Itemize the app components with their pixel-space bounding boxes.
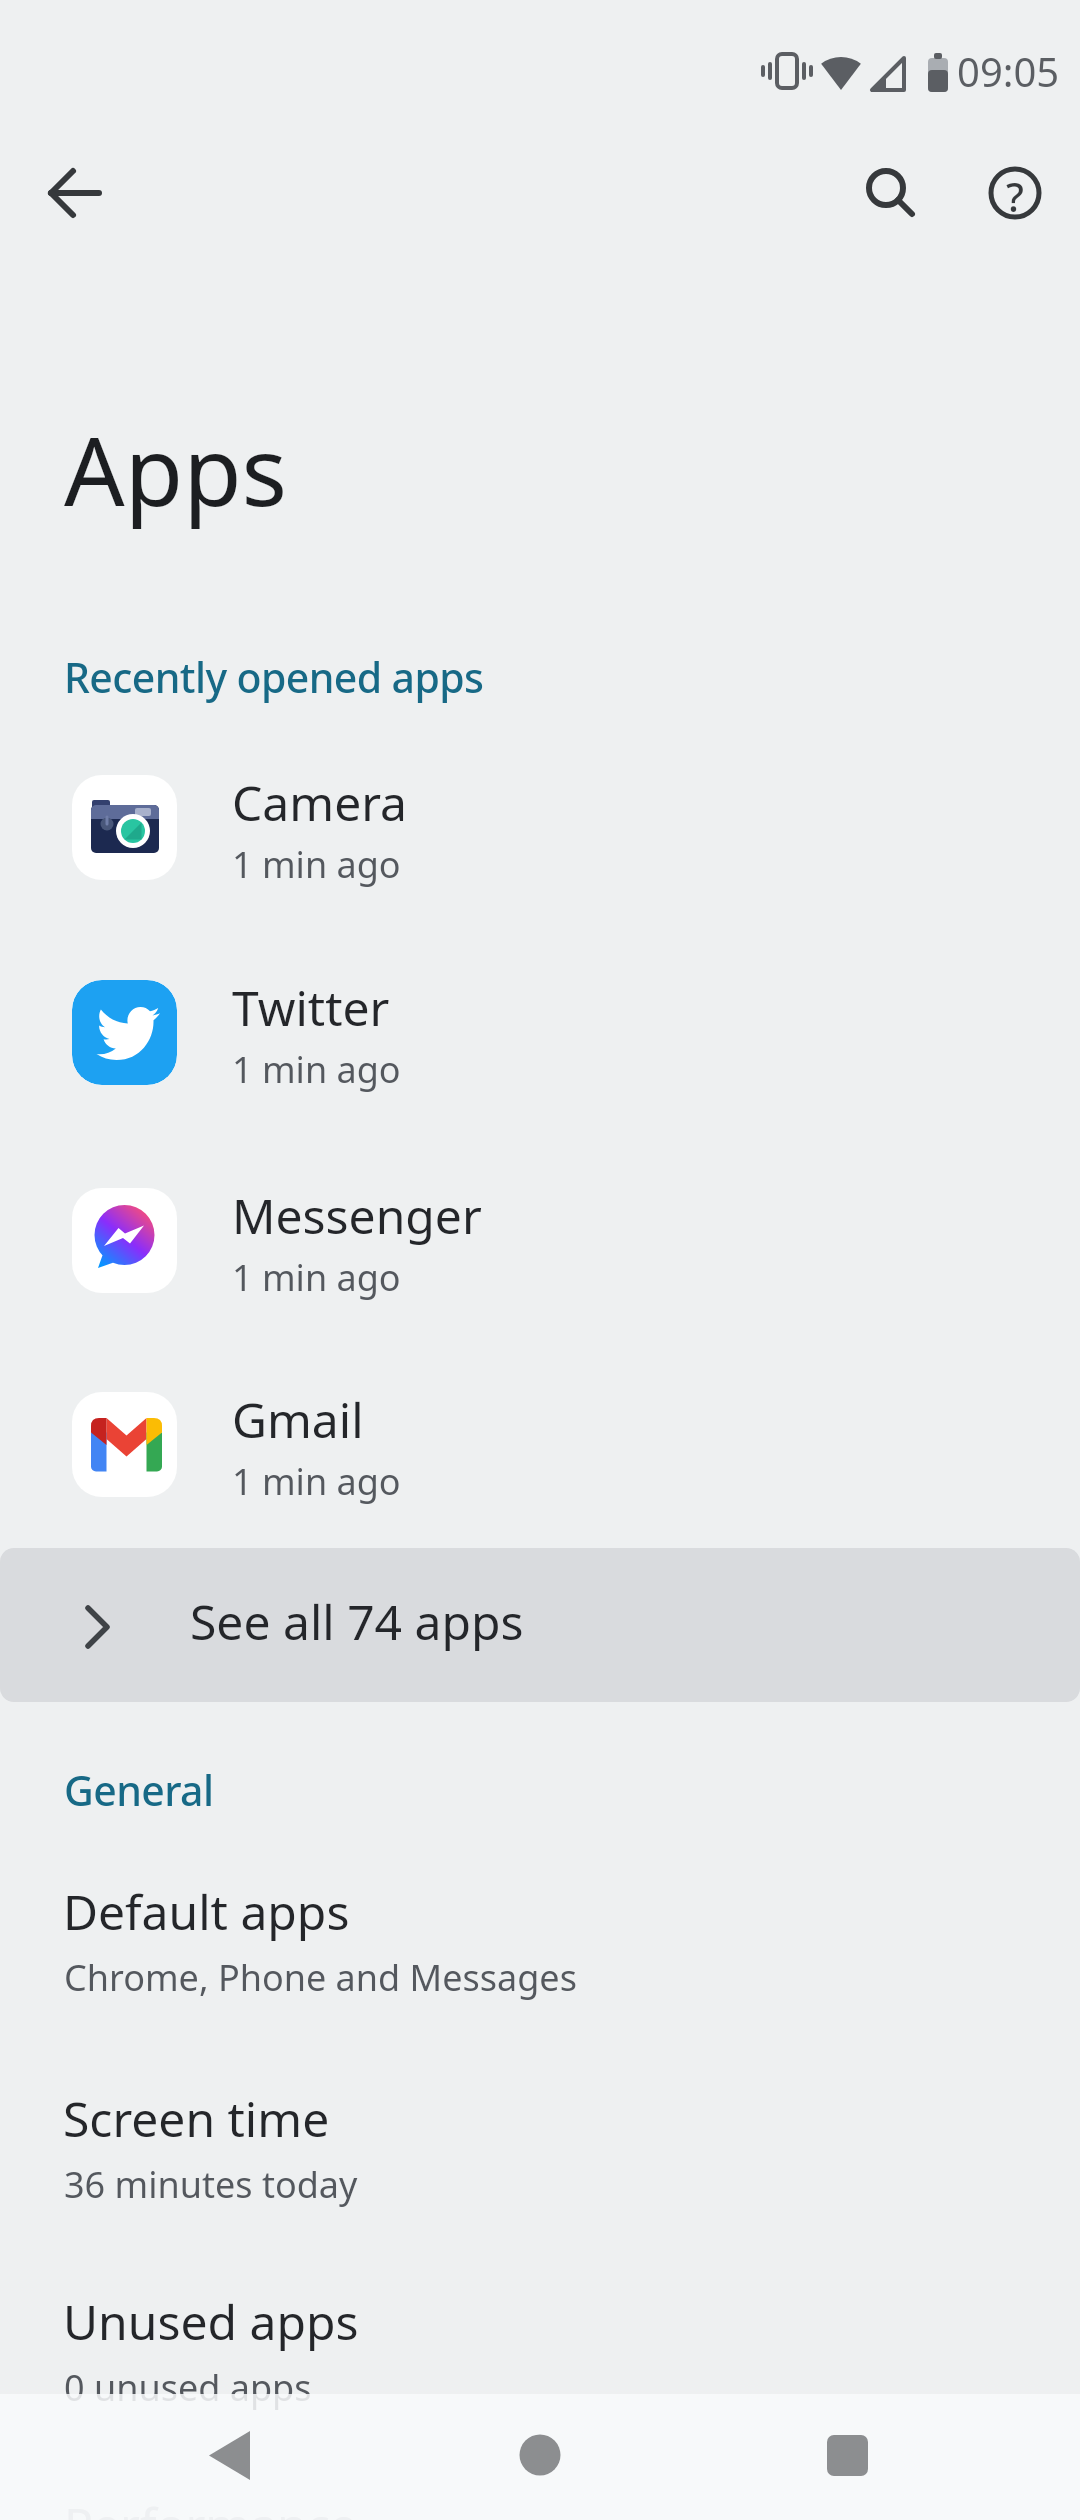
button[interactable] [33,151,117,235]
staticText: 36 minutes today [64,2160,358,2209]
staticText: Twitter [232,975,390,1040]
staticText: Gmail [232,1387,364,1452]
staticText: 1 min ago [232,1045,401,1094]
staticText: Default apps [63,1879,350,1944]
button[interactable]: Default apps [0,1860,1080,2030]
button[interactable] [170,2394,290,2520]
staticText: Messenger [232,1183,482,1248]
button[interactable] [848,151,932,235]
button[interactable]: Camera [0,748,1080,908]
button[interactable]: ? [973,151,1057,235]
button[interactable]: See all 74 apps [0,1548,1080,1702]
staticText: 1 min ago [232,1457,401,1506]
button[interactable]: Unused apps [0,2270,1080,2440]
staticText: Unused apps [63,2289,359,2354]
staticText: Recently opened apps [64,649,484,705]
staticText: Chrome, Phone and Messages [64,1953,577,2002]
staticText: 0 unused apps [64,2363,312,2412]
staticText: Apps [64,404,288,533]
button[interactable]: Screen time [0,2067,1080,2237]
button[interactable]: Twitter [0,953,1080,1113]
staticText: ? [1006,169,1024,223]
button[interactable]: Messenger [0,1161,1080,1321]
staticText: Camera [232,770,408,835]
button[interactable] [788,2394,908,2520]
staticText: 1 min ago [232,840,401,889]
staticText: 1 min ago [232,1253,401,1302]
staticText: General [64,1762,214,1818]
staticText: 09:05 [957,44,1060,98]
button[interactable] [480,2394,600,2520]
staticText: Screen time [63,2086,330,2151]
button[interactable]: Gmail [0,1365,1080,1525]
staticText: See all 74 apps [190,1589,524,1654]
